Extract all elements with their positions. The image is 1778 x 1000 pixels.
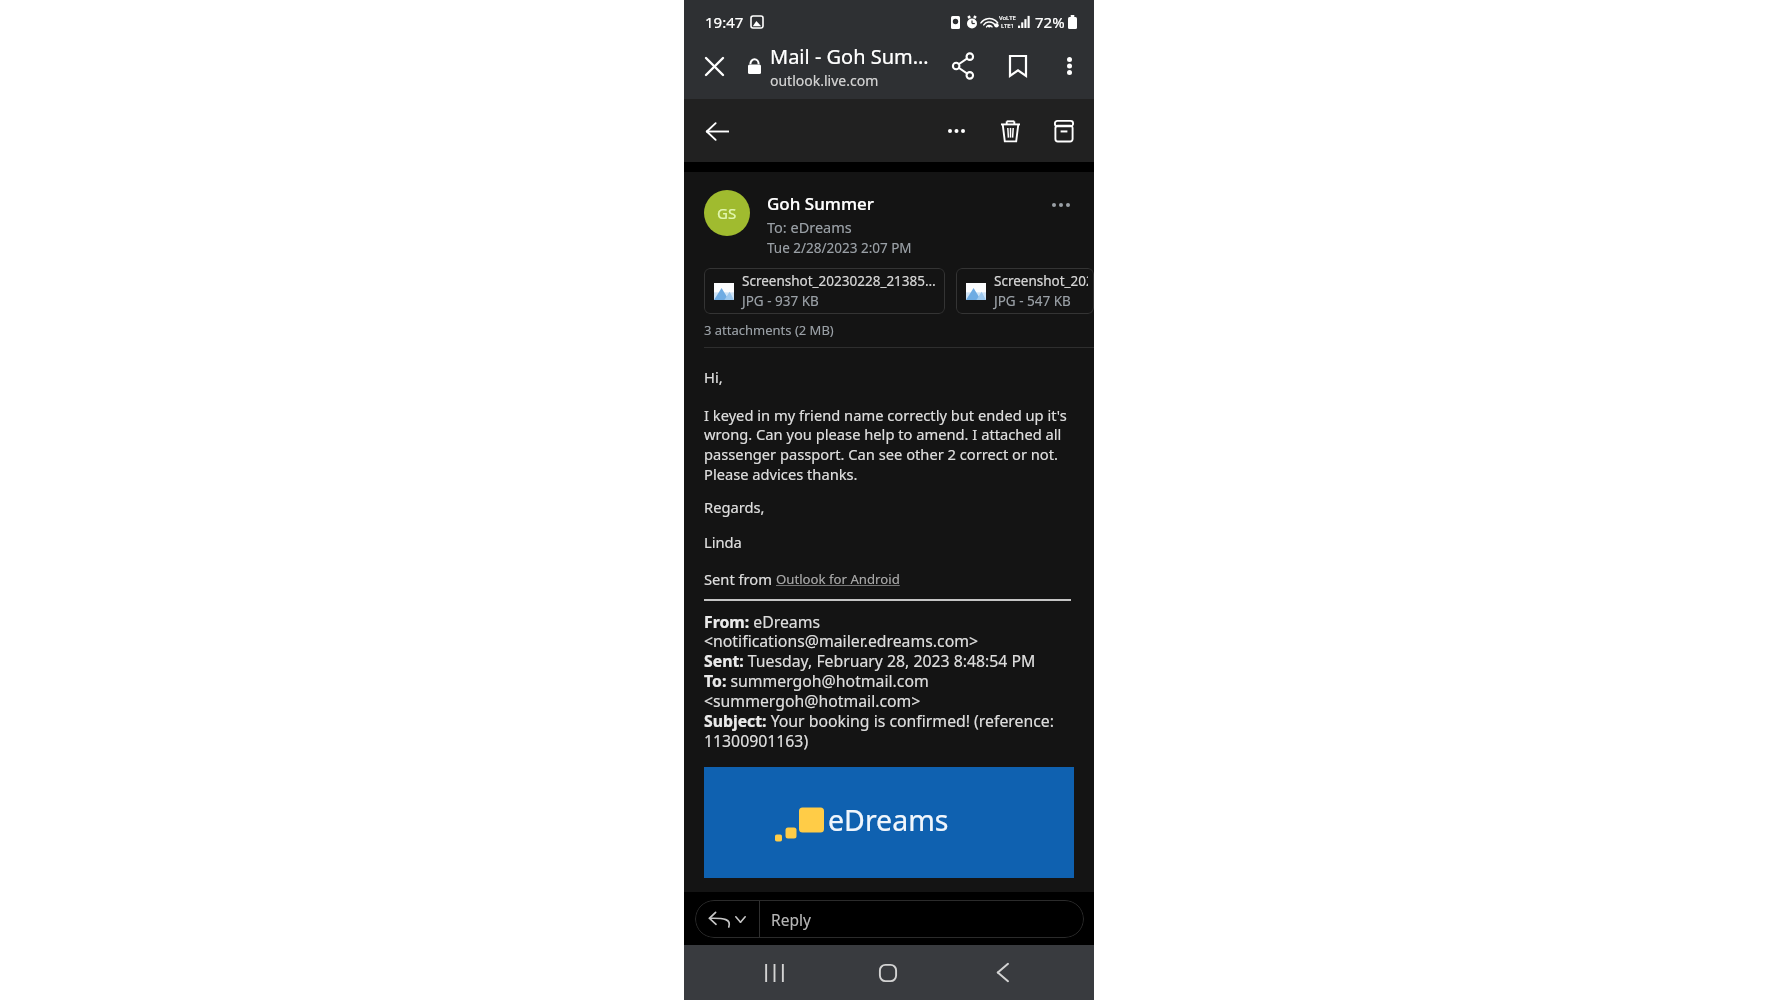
- staticText: JPG - 547 KB: [994, 292, 1071, 310]
- button[interactable]: Message actions: [1046, 190, 1076, 220]
- button[interactable]: Back: [977, 945, 1027, 1000]
- staticText: 3 attachments (2 MB): [704, 321, 834, 339]
- staticText: Hi,: [704, 367, 723, 387]
- button[interactable]: Home: [863, 945, 913, 1000]
- button[interactable]: Close: [691, 44, 737, 88]
- button[interactable]: Outlook for Android: [776, 570, 900, 588]
- staticText: outlook.live.com: [770, 71, 879, 87]
- button[interactable]: Reply options: [695, 900, 759, 938]
- staticText: GS: [717, 203, 737, 223]
- button[interactable]: Back: [694, 108, 740, 154]
- button[interactable]: Screenshot_20230228_21385…: [704, 268, 945, 314]
- staticText: Reply: [771, 909, 811, 930]
- button[interactable]: Archive: [1040, 107, 1088, 155]
- staticText: Screenshot_20230228_21385…: [742, 272, 936, 290]
- button[interactable]: Share: [939, 44, 987, 88]
- button[interactable]: Delete: [986, 107, 1034, 155]
- staticText: Regards,: [704, 497, 765, 517]
- staticText: Screenshot_202: [994, 272, 1088, 290]
- staticText: 72%: [1035, 12, 1065, 32]
- staticText: VoLTE: [999, 14, 1016, 22]
- staticText: Mail - Goh Sum…: [770, 43, 929, 70]
- staticText: Goh Summer: [767, 192, 874, 215]
- staticText: To: eDreams: [767, 217, 852, 237]
- staticText: From: eDreams <notifications@mailer.edre…: [704, 611, 1054, 752]
- staticText: I keyed in my friend name correctly but …: [704, 405, 1080, 485]
- staticText: Sent from: [704, 569, 776, 589]
- staticText: Tue 2/28/2023 2:07 PM: [767, 239, 912, 257]
- staticText: JPG - 937 KB: [742, 292, 819, 310]
- staticText: eDreams: [828, 801, 949, 840]
- button[interactable]: More options: [1049, 46, 1089, 86]
- button[interactable]: Screenshot_202: [956, 268, 1094, 314]
- button[interactable]: Recent apps: [749, 945, 799, 1000]
- button[interactable]: Reply: [760, 900, 1084, 938]
- staticText: Linda: [704, 532, 742, 552]
- button[interactable]: More: [932, 107, 980, 155]
- staticText: 19:47: [705, 12, 744, 32]
- staticText: LTE1: [1001, 22, 1015, 30]
- button[interactable]: Bookmark: [994, 44, 1042, 88]
